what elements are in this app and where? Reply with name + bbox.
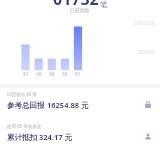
staticText: 参考总回报 <box>7 101 45 110</box>
staticText: 已投参与 66 笔 <box>7 91 37 97</box>
staticText: 48 <box>36 71 42 77</box>
staticText: 47 <box>23 71 29 77</box>
staticText: 31802.6元 <box>134 20 156 26</box>
staticText: 10000元 <box>137 49 155 55</box>
other: Rewards account <box>144 133 152 141</box>
staticText: 50 <box>62 71 68 77</box>
other: Safe deposit <box>144 101 152 109</box>
staticText: 01732 <box>53 0 99 10</box>
staticText: 51 <box>75 71 81 77</box>
staticText: 使用 65 笔奖励金 <box>7 123 42 129</box>
button[interactable]: 已投参与 66 笔 <box>0 89 160 112</box>
staticText: 16254.88 元 <box>47 100 89 110</box>
staticText: 已投笔数 <box>70 7 90 13</box>
staticText: 累计抵扣 <box>7 133 37 142</box>
button[interactable]: 使用 65 笔奖励金 <box>0 121 160 144</box>
staticText: 49 <box>49 71 55 77</box>
staticText: 笔 <box>100 0 107 9</box>
staticText: 324.17 元 <box>39 132 73 142</box>
